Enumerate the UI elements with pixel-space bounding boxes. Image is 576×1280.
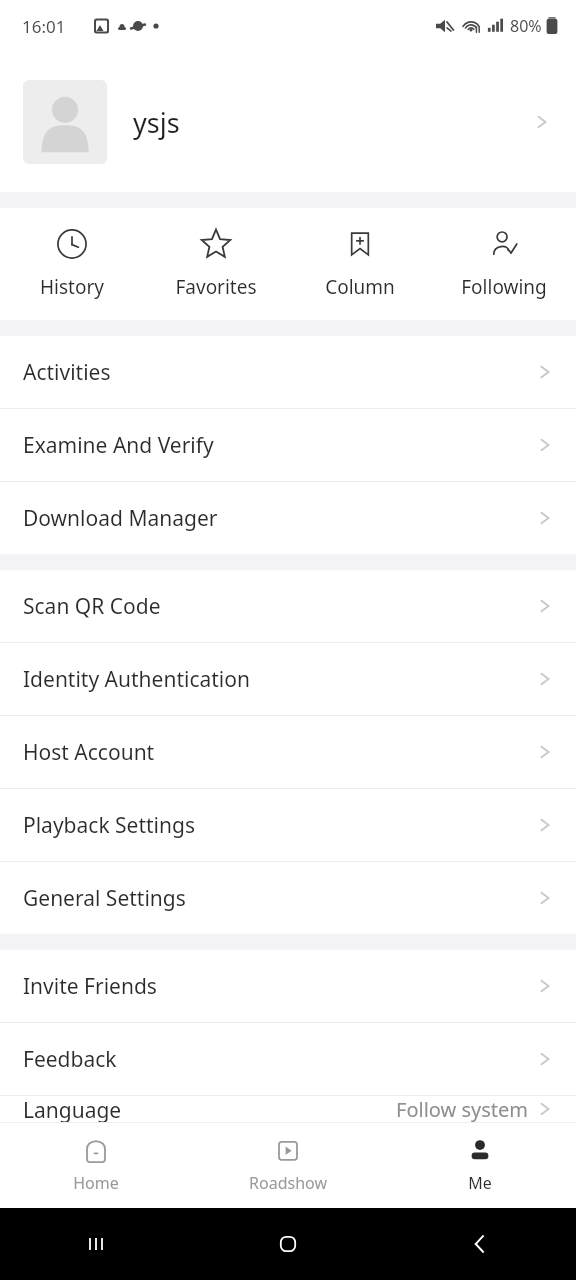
staticText: 16:01 [22,15,66,38]
staticText: 80% [510,15,542,37]
staticText: Playback Settings [23,811,534,840]
staticText: History [40,274,104,300]
staticText: Invite Friends [23,972,534,1001]
button[interactable]: Me [384,1131,576,1200]
button[interactable]: Following [432,220,576,308]
staticText: Following [461,274,547,300]
staticText: General Settings [23,884,534,913]
button[interactable]: Scan QR Code [0,570,576,642]
button[interactable]: Language [0,1096,576,1122]
button[interactable]: Recents [0,1208,192,1280]
staticText: Host Account [23,738,534,767]
staticText: Feedback [23,1045,534,1074]
button[interactable]: Activities [0,336,576,408]
button[interactable]: General Settings [0,862,576,934]
button[interactable]: History [0,220,144,308]
button[interactable]: Download Manager [0,482,576,554]
button[interactable]: Back [384,1208,576,1280]
staticText: Roadshow [249,1172,327,1194]
staticText: Activities [23,358,534,387]
button[interactable]: Home [0,1131,192,1200]
staticText: Me [468,1172,492,1194]
staticText: Language [23,1096,396,1122]
button[interactable]: Column [288,220,432,308]
button[interactable]: Identity Authentication [0,643,576,715]
staticText: Examine And Verify [23,431,534,460]
button[interactable]: Invite Friends [0,950,576,1022]
staticText: Home [73,1172,119,1194]
button[interactable]: Favorites [144,220,288,308]
button[interactable]: Host Account [0,716,576,788]
staticText: Favorites [175,274,257,300]
staticText: Column [325,274,395,300]
button[interactable]: ysjs [0,52,576,192]
staticText: Follow system [396,1096,528,1122]
button[interactable]: Feedback [0,1023,576,1095]
staticText: Scan QR Code [23,592,534,621]
staticText: Identity Authentication [23,665,534,694]
button[interactable]: Examine And Verify [0,409,576,481]
button[interactable]: Home [192,1208,384,1280]
button[interactable]: Roadshow [192,1131,384,1200]
staticText: Download Manager [23,504,534,533]
staticText: ysjs [133,104,531,141]
button[interactable]: Playback Settings [0,789,576,861]
